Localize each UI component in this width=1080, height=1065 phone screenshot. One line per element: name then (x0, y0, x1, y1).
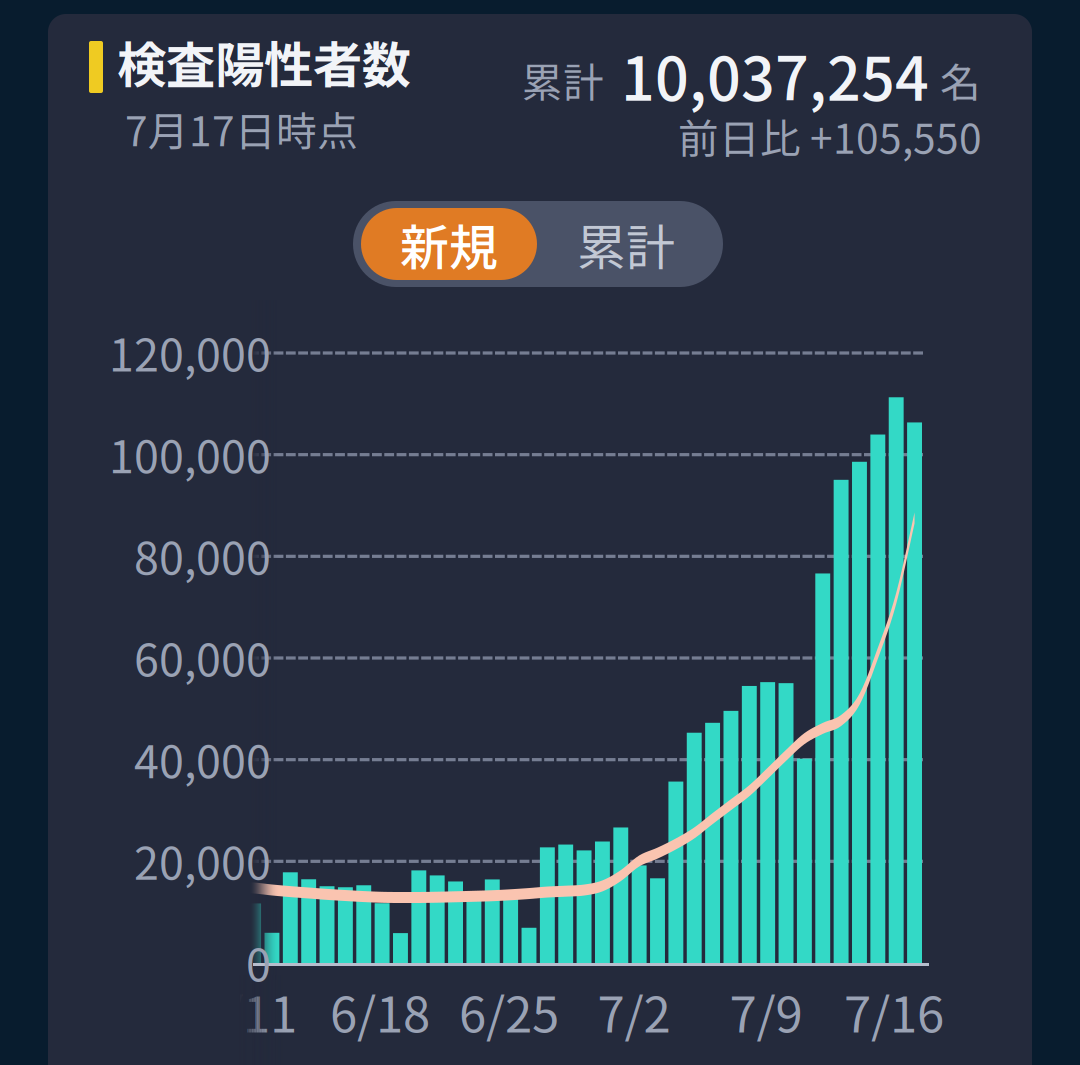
staticText: 100,000 (109, 421, 271, 486)
staticText: 累計 (522, 51, 604, 109)
staticText: 検査陽性者数 (117, 26, 411, 97)
staticText: 前日比 +105,550 (678, 107, 982, 165)
staticText: 60,000 (134, 625, 271, 689)
staticText: 7/9 (729, 975, 802, 1046)
staticText: 6/11 (197, 975, 297, 1046)
button[interactable]: 累計 (537, 208, 715, 280)
staticText: 0 (246, 930, 271, 994)
staticText: 20,000 (134, 828, 271, 893)
staticText: 40,000 (134, 726, 271, 791)
staticText: 6/25 (459, 975, 559, 1046)
staticText: 名 (940, 51, 981, 109)
staticText: 累計 (577, 209, 675, 279)
staticText: 80,000 (134, 523, 271, 588)
staticText: 新規 (400, 209, 498, 279)
staticText: 7/16 (844, 975, 944, 1046)
staticText: 6/18 (330, 975, 430, 1046)
staticText: 120,000 (109, 320, 271, 384)
staticText: 7/2 (597, 975, 670, 1046)
button[interactable]: 新規 (361, 208, 537, 280)
staticText: 7月17日時点 (125, 99, 358, 158)
staticText: 10,037,254 (621, 32, 929, 118)
